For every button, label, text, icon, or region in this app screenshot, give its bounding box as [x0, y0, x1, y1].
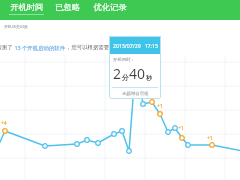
staticText: 开机时间	[10, 2, 44, 12]
staticText: 无新增自启项	[122, 91, 149, 97]
staticText: 2015/07/29 17:15	[113, 42, 158, 49]
staticText: 开机历史记录	[4, 24, 28, 29]
staticText: 2	[113, 64, 122, 83]
staticText: 秒	[146, 74, 152, 82]
staticText: 13 个开机启动的软件	[13, 44, 66, 51]
staticText: +1	[207, 135, 213, 142]
staticText: ，您可以根据需要进行优化	[66, 44, 131, 51]
staticText: 共检测了	[0, 44, 13, 51]
button[interactable]: 已忽略	[54, 0, 81, 20]
button[interactable]: 开机时间	[9, 0, 44, 20]
staticText: 分	[122, 73, 129, 82]
staticText: 已忽略	[55, 2, 80, 12]
staticText: +1	[178, 125, 184, 132]
staticText: 优化记录	[93, 2, 127, 12]
staticText: +1	[157, 103, 163, 110]
button[interactable]: 优化记录	[92, 0, 127, 20]
staticText: +4	[1, 120, 7, 127]
staticText: 40	[129, 64, 146, 83]
staticText: 开机用时：	[113, 57, 135, 63]
